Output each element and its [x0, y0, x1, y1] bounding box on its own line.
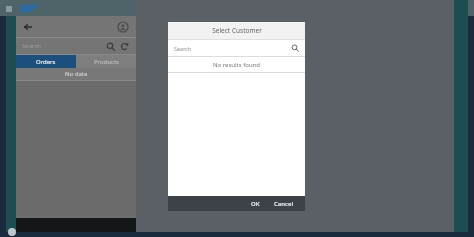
button[interactable]: Products: [76, 55, 136, 68]
button[interactable]: Cancel: [269, 198, 299, 210]
button[interactable]: Back: [22, 21, 34, 33]
button[interactable]: Search: [22, 42, 105, 50]
button[interactable]: Refresh: [119, 41, 130, 52]
staticText: Search: [22, 42, 41, 50]
button[interactable]: Orders: [16, 55, 76, 68]
button[interactable]: Home indicator: [8, 228, 16, 236]
staticText: Search: [174, 45, 192, 52]
button[interactable]: Search: [174, 40, 299, 56]
staticText: No data: [65, 70, 88, 78]
button[interactable]: OK: [246, 198, 265, 210]
staticText: Cancel: [274, 200, 294, 208]
staticText: Orders: [36, 58, 56, 66]
staticText: Products: [94, 58, 119, 66]
button[interactable]: Home: [4, 4, 13, 13]
staticText: DEV1: [444, 6, 457, 13]
staticText: No results found: [213, 61, 261, 69]
button[interactable]: Search: [105, 41, 116, 52]
button[interactable]: SAP: [20, 4, 40, 13]
button[interactable]: Account: [117, 21, 129, 33]
staticText: OK: [251, 200, 260, 208]
button[interactable]: DEV1: [433, 5, 464, 13]
staticText: Select Customer: [212, 26, 262, 35]
